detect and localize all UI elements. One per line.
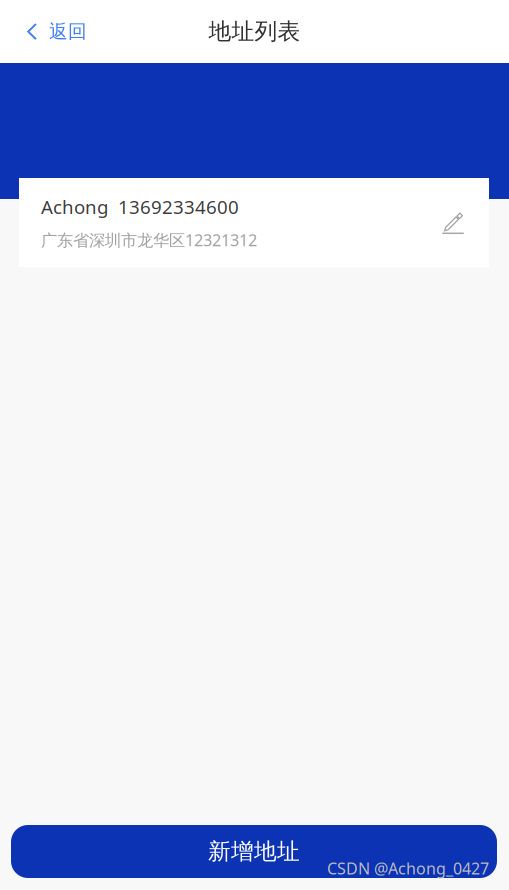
button[interactable]: 返回 xyxy=(0,0,101,63)
staticText: 地址列表 xyxy=(208,18,300,45)
staticText: 新增地址 xyxy=(208,838,300,865)
button[interactable]: Edit address xyxy=(428,178,489,267)
staticText: CSDN @Achong_0427 xyxy=(327,858,489,879)
staticText: Achong 13692334600 xyxy=(41,194,239,219)
staticText: 返回 xyxy=(49,20,87,43)
button[interactable]: Achong 13692334600 xyxy=(19,178,489,267)
staticText: 广东省深圳市龙华区12321312 xyxy=(41,229,257,251)
button[interactable]: 新增地址 xyxy=(11,825,497,878)
